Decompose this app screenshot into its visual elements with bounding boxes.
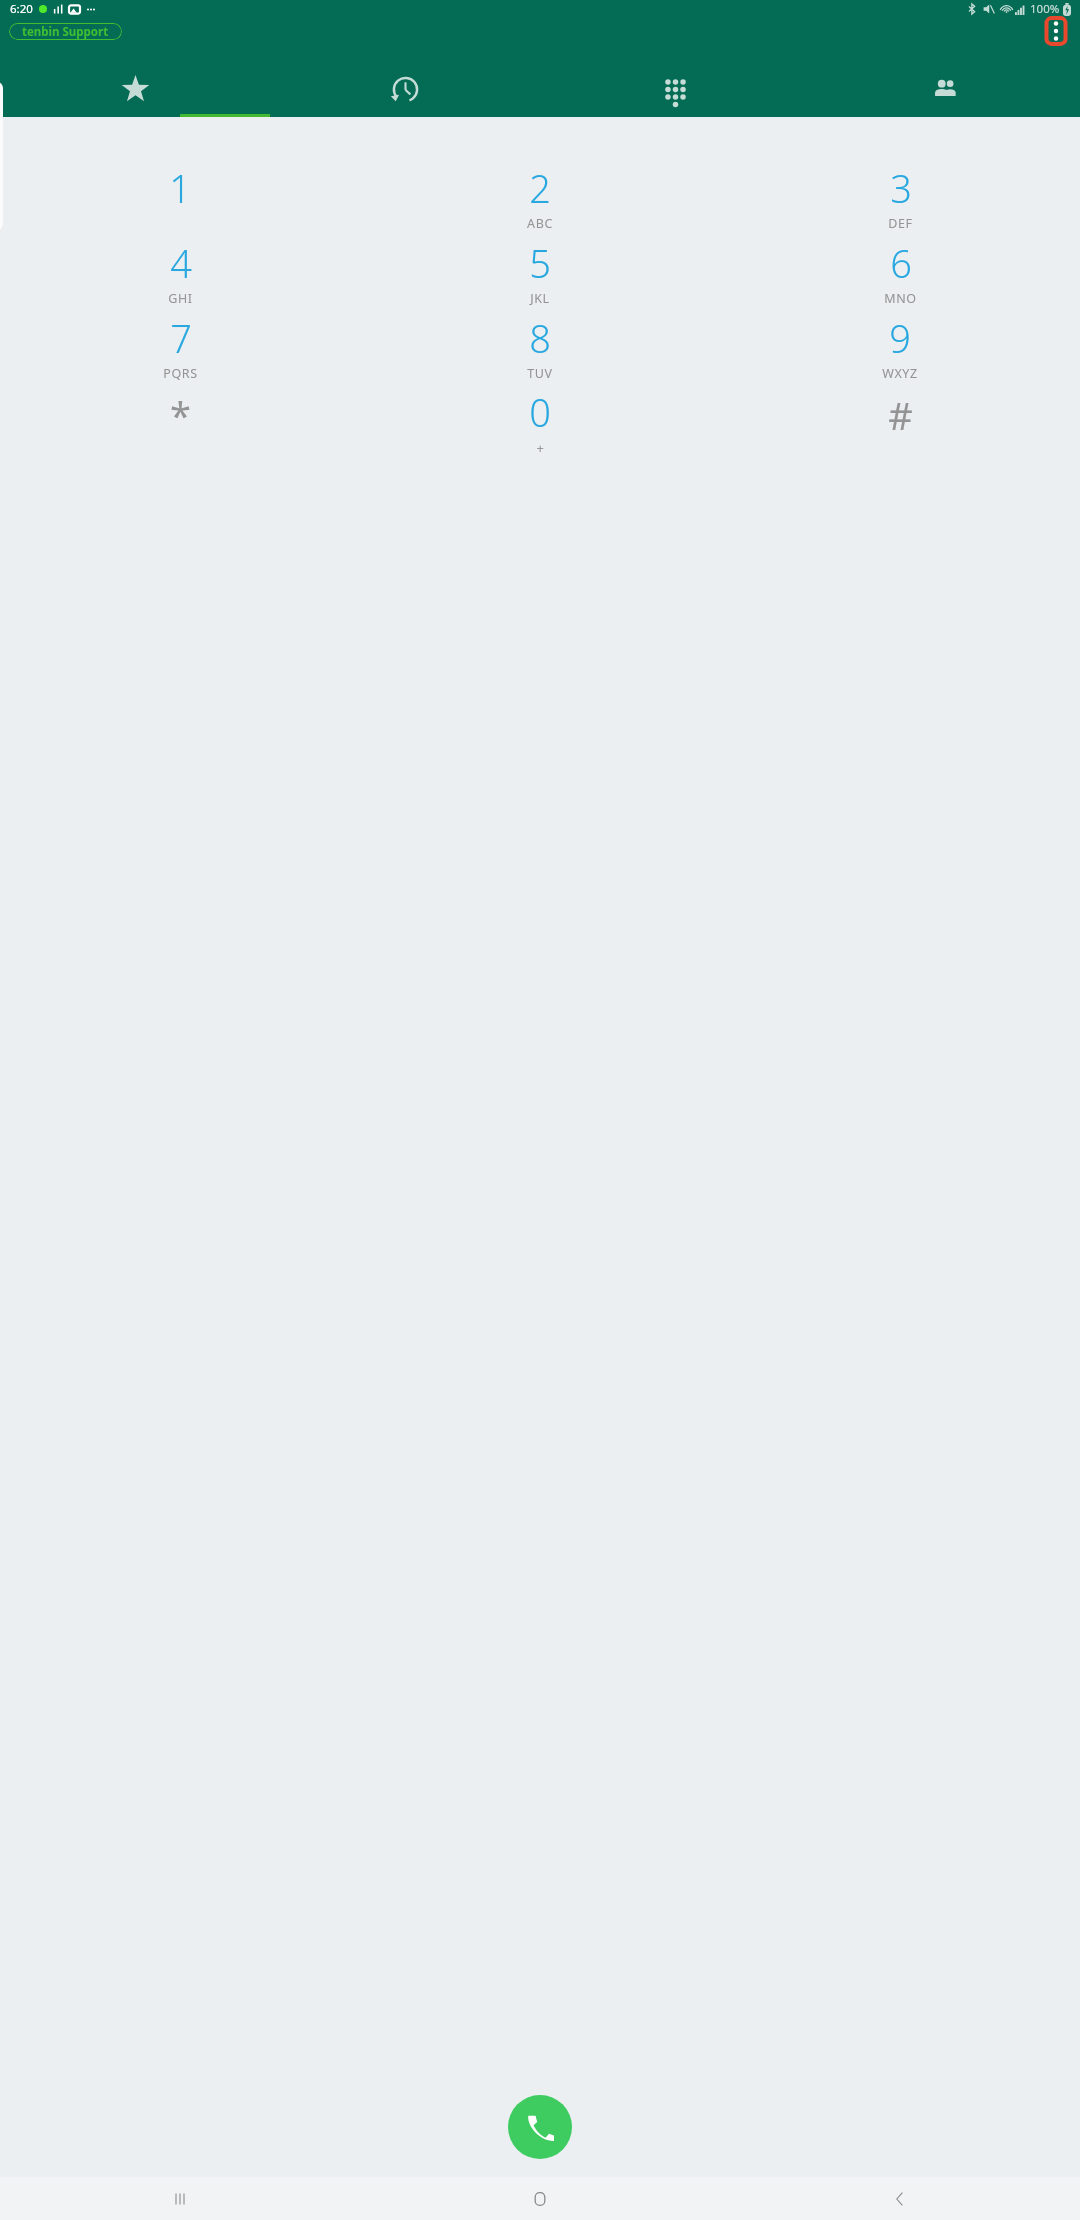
button[interactable]: Keypad: [540, 71, 810, 117]
staticText: 3: [890, 162, 912, 214]
button[interactable]: Favorites: [0, 71, 270, 117]
button[interactable]: 0: [360, 384, 720, 459]
staticText: 1: [169, 162, 191, 214]
staticText: MNO: [884, 290, 917, 307]
staticText: DEF: [888, 215, 913, 232]
button[interactable]: 1: [0, 159, 360, 234]
staticText: 5: [529, 237, 551, 289]
button[interactable]: Call: [508, 2095, 572, 2159]
staticText: 100%: [1030, 1, 1060, 17]
button[interactable]: 9: [720, 309, 1080, 384]
staticText: tenbin Support: [22, 24, 109, 40]
button[interactable]: 3: [720, 159, 1080, 234]
button[interactable]: 5: [360, 234, 720, 309]
staticText: #: [888, 389, 913, 441]
button[interactable]: 4: [0, 234, 360, 309]
button[interactable]: Recent apps: [0, 2177, 360, 2220]
button[interactable]: 7: [0, 309, 360, 384]
button[interactable]: 2: [360, 159, 720, 234]
staticText: 6:20: [10, 1, 33, 17]
button[interactable]: 8: [360, 309, 720, 384]
button[interactable]: More options: [1039, 14, 1073, 48]
staticText: 0: [529, 386, 551, 438]
button[interactable]: Contacts: [810, 71, 1080, 117]
staticText: PQRS: [163, 365, 198, 382]
staticText: JKL: [530, 290, 550, 307]
staticText: 4: [170, 237, 192, 289]
staticText: 2: [529, 162, 551, 214]
button[interactable]: #: [720, 384, 1080, 459]
staticText: TUV: [527, 365, 553, 382]
button[interactable]: 6: [720, 234, 1080, 309]
button[interactable]: Home: [360, 2177, 720, 2220]
staticText: 9: [889, 312, 911, 364]
staticText: +: [536, 439, 545, 457]
staticText: 7: [170, 312, 192, 364]
staticText: GHI: [168, 290, 193, 307]
button[interactable]: Back: [720, 2177, 1080, 2220]
button[interactable]: Recents: [270, 71, 540, 117]
button[interactable]: *: [0, 384, 360, 459]
staticText: *: [170, 389, 191, 441]
button[interactable]: tenbin Support: [9, 23, 122, 40]
staticText: WXYZ: [882, 365, 918, 382]
staticText: 8: [529, 312, 551, 364]
staticText: ABC: [527, 215, 553, 232]
staticText: 6: [890, 237, 912, 289]
